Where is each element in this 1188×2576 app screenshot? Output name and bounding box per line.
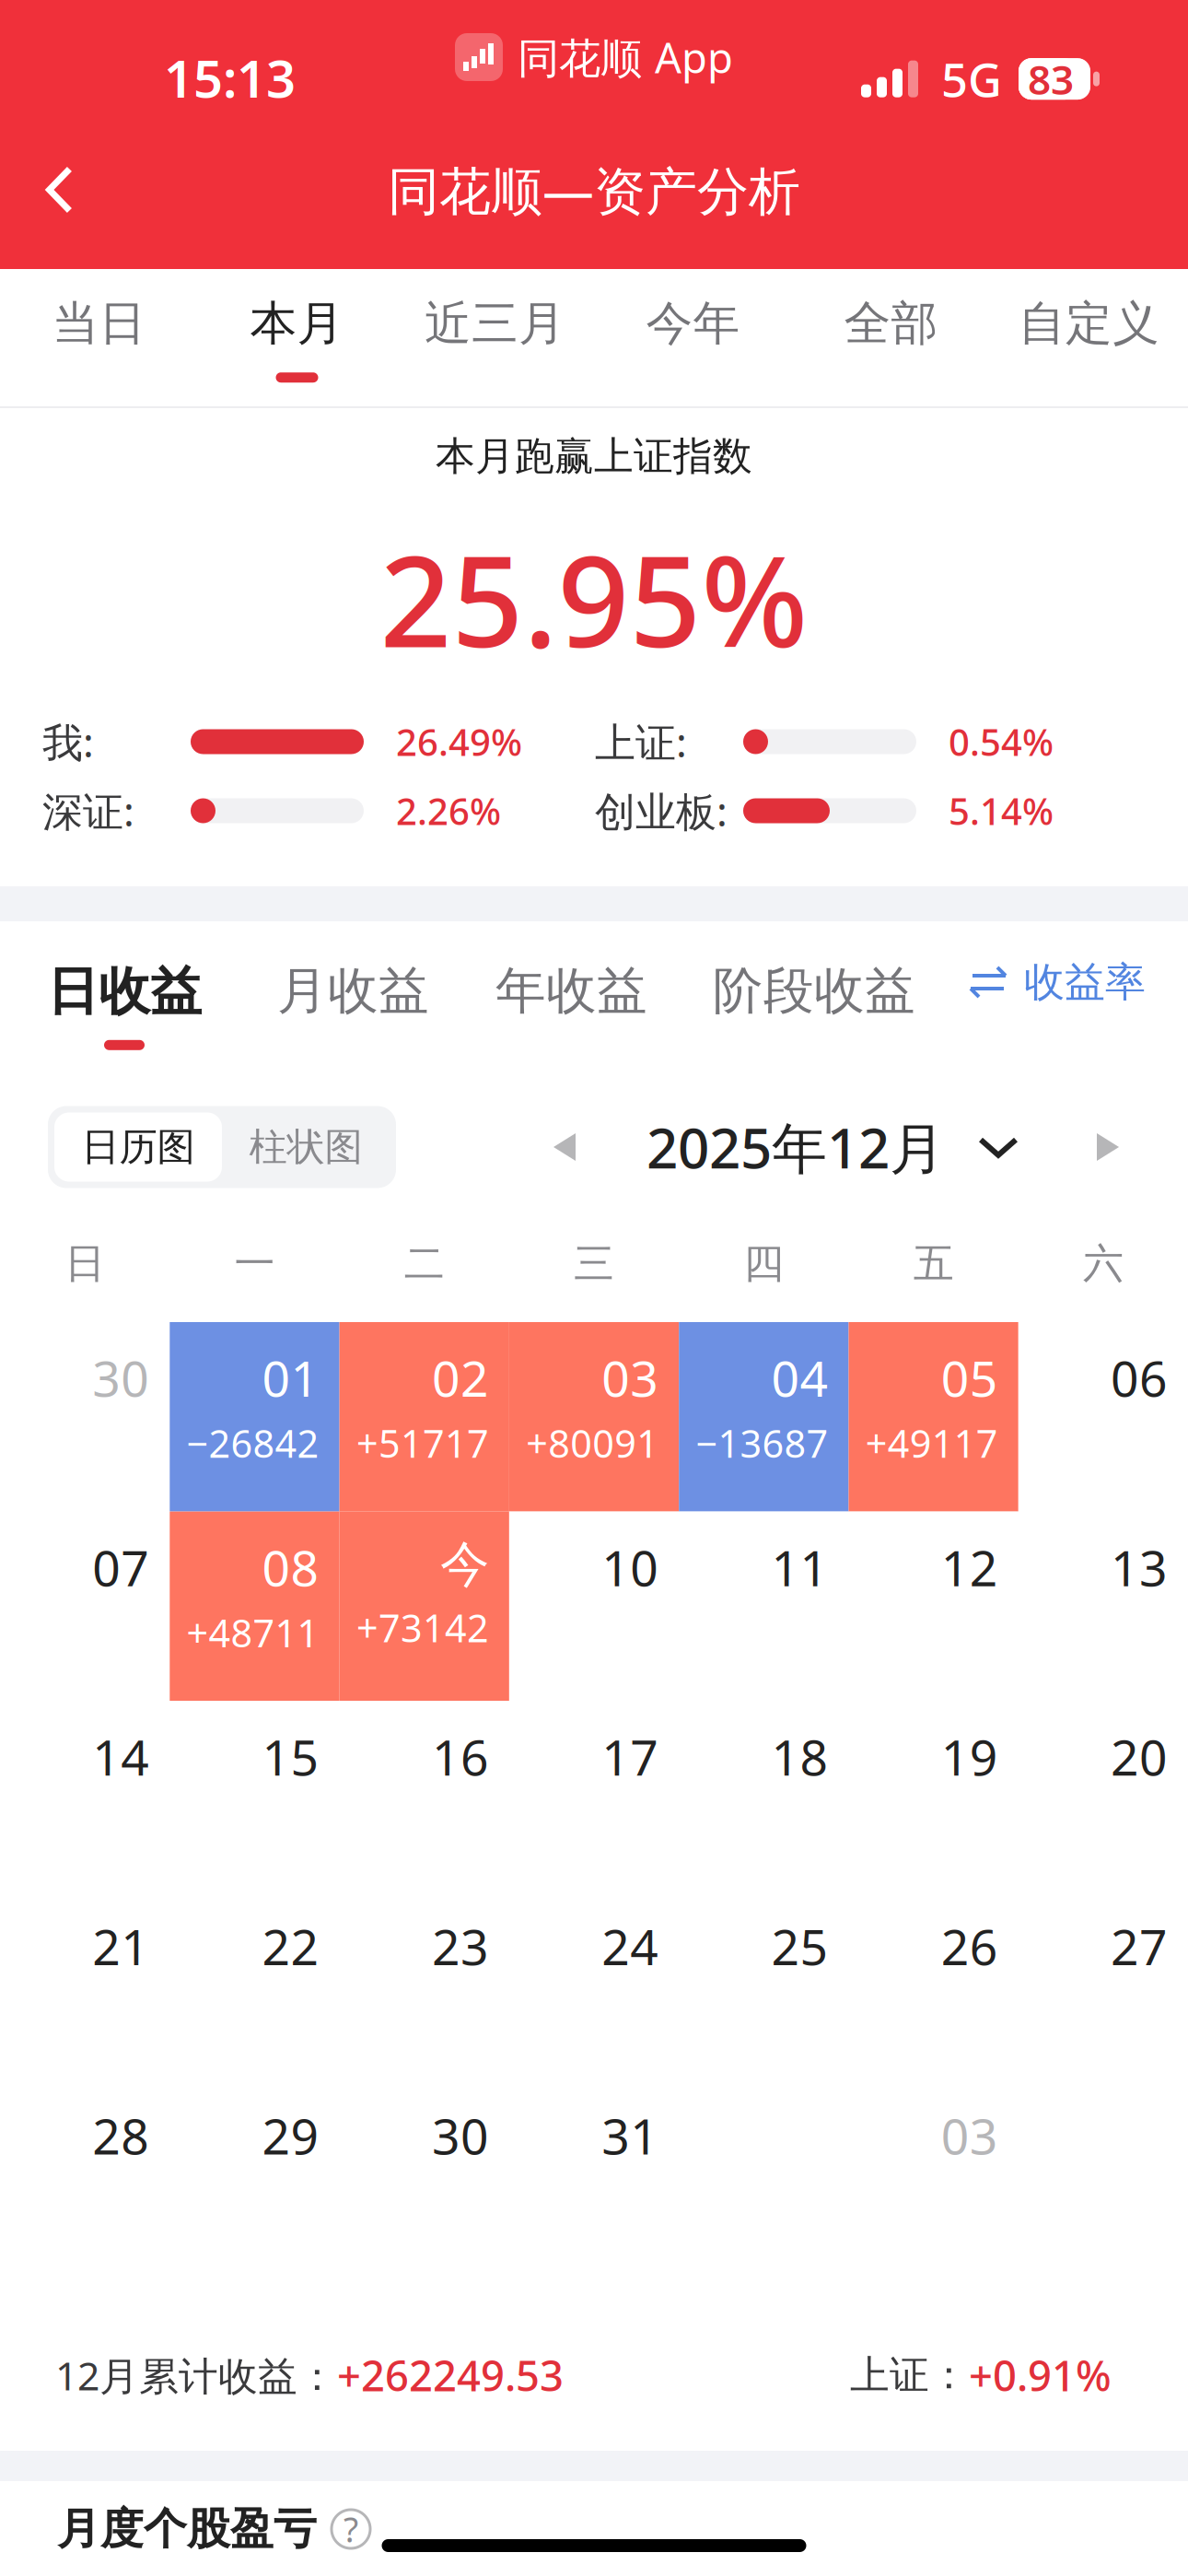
staticText: 17 [602,1724,659,1789]
staticText: 02 [432,1345,489,1410]
staticText: 上证： [850,2351,969,2399]
staticText: 27 [1111,1913,1168,1979]
button[interactable]: 年收益 [495,921,647,1043]
staticText: 5G [941,48,1002,110]
staticText: 28 [92,2103,149,2168]
button[interactable]: Next month [1072,1107,1144,1188]
staticText: 24 [602,1913,659,1979]
staticText: 三 [574,1239,614,1288]
staticText: 23 [432,1913,489,1979]
staticText: ? [344,2506,358,2552]
button[interactable]: 日历图 [48,1106,396,1188]
staticText: 12 [941,1535,998,1600]
staticText: +73142 [356,1602,489,1653]
staticText: 19 [941,1724,998,1789]
staticText: 今 [440,1535,489,1595]
staticText: 10 [602,1535,659,1600]
staticText: 15:13 [164,43,296,112]
staticText: 15 [262,1724,319,1789]
staticText: 04 [771,1345,828,1410]
staticText: 13 [1111,1535,1168,1600]
staticText: +80091 [526,1418,659,1468]
staticText: 11 [771,1535,828,1600]
staticText: 五 [913,1239,954,1288]
staticText: +262249.53 [337,2347,564,2403]
staticText: 年收益 [495,960,647,1022]
staticText: −26842 [187,1418,319,1468]
staticText: 08 [262,1535,319,1600]
staticText: 阶段收益 [713,960,915,1022]
staticText: 26.49% [396,717,522,766]
staticText: 近三月 [425,295,565,352]
staticText: 18 [771,1724,828,1789]
button[interactable]: 本月 [198,269,396,406]
staticText: 06 [1111,1345,1168,1410]
staticText: 30 [432,2103,489,2168]
staticText: 5.14% [949,786,1054,835]
staticText: 20 [1111,1724,1168,1789]
button[interactable]: 2025年12月 [646,1107,1019,1188]
staticText: 上证: [595,715,687,769]
staticText: 12月累计收益： [55,2349,337,2401]
staticText: 日 [65,1239,105,1288]
staticText: 创业板: [595,784,728,838]
staticText: 25.95% [380,515,808,682]
button[interactable]: 月收益 [277,921,429,1043]
staticText: 柱状图 [249,1124,362,1170]
button[interactable]: 收益率 [971,921,1146,1043]
staticText: 03 [602,1345,659,1410]
staticText: 今年 [646,295,740,352]
staticText: 日历图 [82,1124,195,1170]
staticText: 16 [432,1724,489,1789]
staticText: 0.54% [949,717,1054,766]
staticText: +51717 [356,1418,489,1468]
staticText: 同花顺—资产分析 [388,156,800,224]
staticText: 我: [42,715,94,769]
staticText: 83 [1028,52,1074,106]
staticText: 本月跑赢上证指数 [436,432,752,480]
staticText: 自定义 [1019,295,1159,352]
staticText: 03 [941,2103,998,2168]
staticText: 21 [92,1913,149,1979]
staticText: 一 [234,1239,275,1288]
button[interactable]: 自定义 [990,269,1188,406]
staticText: +49117 [865,1418,998,1468]
button[interactable]: 阶段收益 [713,921,915,1043]
button[interactable]: 当日 [0,269,198,406]
staticText: 05 [941,1345,998,1410]
button[interactable]: Back [0,135,120,245]
staticText: 26 [941,1913,998,1979]
staticText: 二 [404,1239,445,1288]
staticText: 2.26% [396,786,501,835]
staticText: +48711 [187,1607,319,1658]
staticText: 收益率 [1024,957,1146,1007]
staticText: 四 [744,1239,784,1288]
button[interactable]: Previous month [529,1107,600,1188]
staticText: 日收益 [47,960,202,1023]
button[interactable]: 日收益 [47,921,202,1043]
staticText: 14 [92,1724,149,1789]
staticText: 01 [262,1345,319,1410]
button[interactable]: 全部 [792,269,990,406]
button[interactable]: 今年 [594,269,792,406]
staticText: 07 [92,1535,149,1600]
button[interactable]: 近三月 [396,269,594,406]
staticText: 29 [262,2103,319,2168]
staticText: 22 [262,1913,319,1979]
staticText: 25 [771,1913,828,1979]
staticText: 月收益 [277,960,429,1022]
staticText: 深证: [42,784,134,838]
staticText: 六 [1083,1239,1124,1288]
staticText: −13687 [696,1418,828,1468]
staticText: 月度个股盈亏 [57,2503,317,2555]
staticText: 全部 [844,295,938,352]
staticText: 同花顺 App [518,29,733,85]
staticText: 30 [92,1345,149,1410]
staticText: 本月 [250,295,344,352]
staticText: 当日 [52,295,146,352]
staticText: 2025年12月 [646,1110,945,1184]
staticText: +0.91% [969,2347,1112,2403]
staticText: 31 [602,2103,659,2168]
